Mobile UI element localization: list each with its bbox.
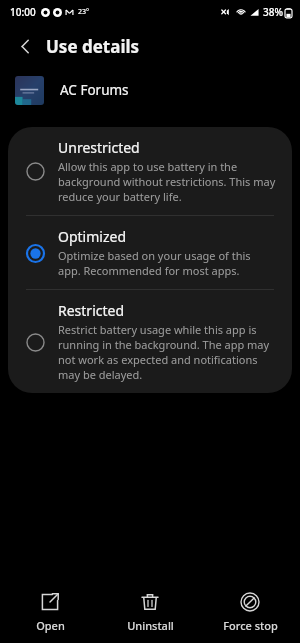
button[interactable]: Restricted (8, 290, 292, 393)
staticText: 23° (78, 7, 90, 17)
staticText: Optimized (58, 227, 126, 246)
staticText: Open (36, 618, 65, 633)
staticText: Unrestricted (58, 138, 140, 157)
button[interactable]: Optimized (8, 216, 292, 289)
button[interactable]: Uninstall (100, 586, 200, 639)
button[interactable]: AC Forums (0, 68, 300, 112)
staticText: Allow this app to use battery in the bac… (58, 159, 276, 204)
staticText: 10:00 (10, 5, 36, 19)
staticText: Optimize based on your usage of this app… (58, 248, 276, 278)
button[interactable]: Open (0, 586, 100, 639)
button[interactable]: Force stop (200, 586, 300, 639)
button[interactable]: Back (8, 29, 42, 63)
staticText: Restrict battery usage while this app is… (58, 322, 276, 382)
button[interactable]: Unrestricted (8, 127, 292, 215)
staticText: Restricted (58, 301, 125, 320)
staticText: Force stop (223, 618, 278, 633)
staticText: 38% (263, 5, 283, 19)
staticText: Use details (46, 35, 140, 58)
staticText: AC Forums (60, 81, 129, 99)
staticText: Uninstall (127, 618, 174, 633)
